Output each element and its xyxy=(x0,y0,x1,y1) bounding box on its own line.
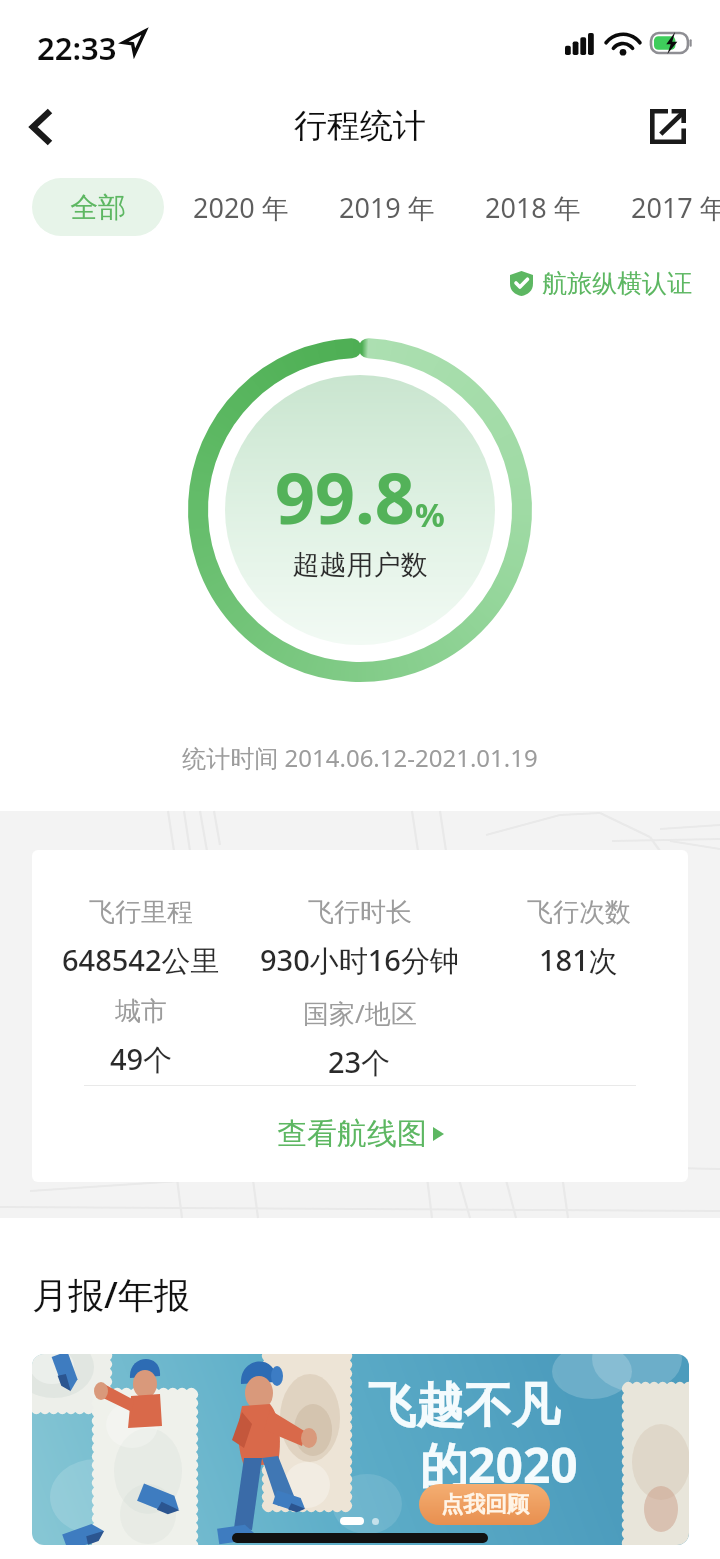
staticText: 飞行次数 xyxy=(527,896,631,929)
staticText: 99.8 xyxy=(275,449,415,544)
staticText: 22:33 xyxy=(37,27,117,69)
button[interactable]: Share xyxy=(634,92,702,160)
staticText: 2017 年 xyxy=(631,189,720,226)
button[interactable]: 点我回顾 xyxy=(419,1484,550,1525)
staticText: 的2020 xyxy=(420,1432,578,1498)
staticText: 点我回顾 xyxy=(441,1491,529,1519)
staticText: 飞越不凡 xyxy=(368,1376,560,1436)
staticText: 国家/地区 xyxy=(303,995,417,1031)
button[interactable]: Back xyxy=(7,93,75,161)
button[interactable]: 飞越不凡 xyxy=(32,1354,689,1545)
staticText: 648542公里 xyxy=(62,940,220,980)
staticText: 181次 xyxy=(539,940,618,980)
staticText: 2019 年 xyxy=(339,189,435,226)
staticText: 飞行时长 xyxy=(308,896,412,929)
staticText: 月报/年报 xyxy=(32,1270,190,1319)
staticText: 飞行里程 xyxy=(89,896,193,929)
staticText: % xyxy=(415,492,445,537)
button[interactable]: 2018 年 xyxy=(476,178,590,236)
staticText: 2020 年 xyxy=(193,189,289,226)
staticText: 统计时间 2014.06.12-2021.01.19 xyxy=(0,741,720,774)
staticText: 2018 年 xyxy=(485,189,581,226)
staticText: 城市 xyxy=(115,995,167,1028)
staticText: 航旅纵横认证 xyxy=(542,268,692,299)
staticText: 行程统计 xyxy=(0,105,720,147)
button[interactable]: 2017 年 xyxy=(622,178,720,236)
staticText: 49个 xyxy=(110,1039,173,1079)
button[interactable]: 2020 年 xyxy=(184,178,298,236)
staticText: 超越用户数 xyxy=(225,548,495,582)
button[interactable]: 全部 xyxy=(32,178,164,236)
staticText: 23个 xyxy=(328,1042,391,1082)
staticText: 930小时16分钟 xyxy=(260,940,459,980)
staticText: 全部 xyxy=(70,190,126,225)
button[interactable]: 查看航线图 xyxy=(32,1086,688,1182)
staticText: 查看航线图 xyxy=(277,1115,427,1153)
button[interactable]: 2019 年 xyxy=(330,178,444,236)
